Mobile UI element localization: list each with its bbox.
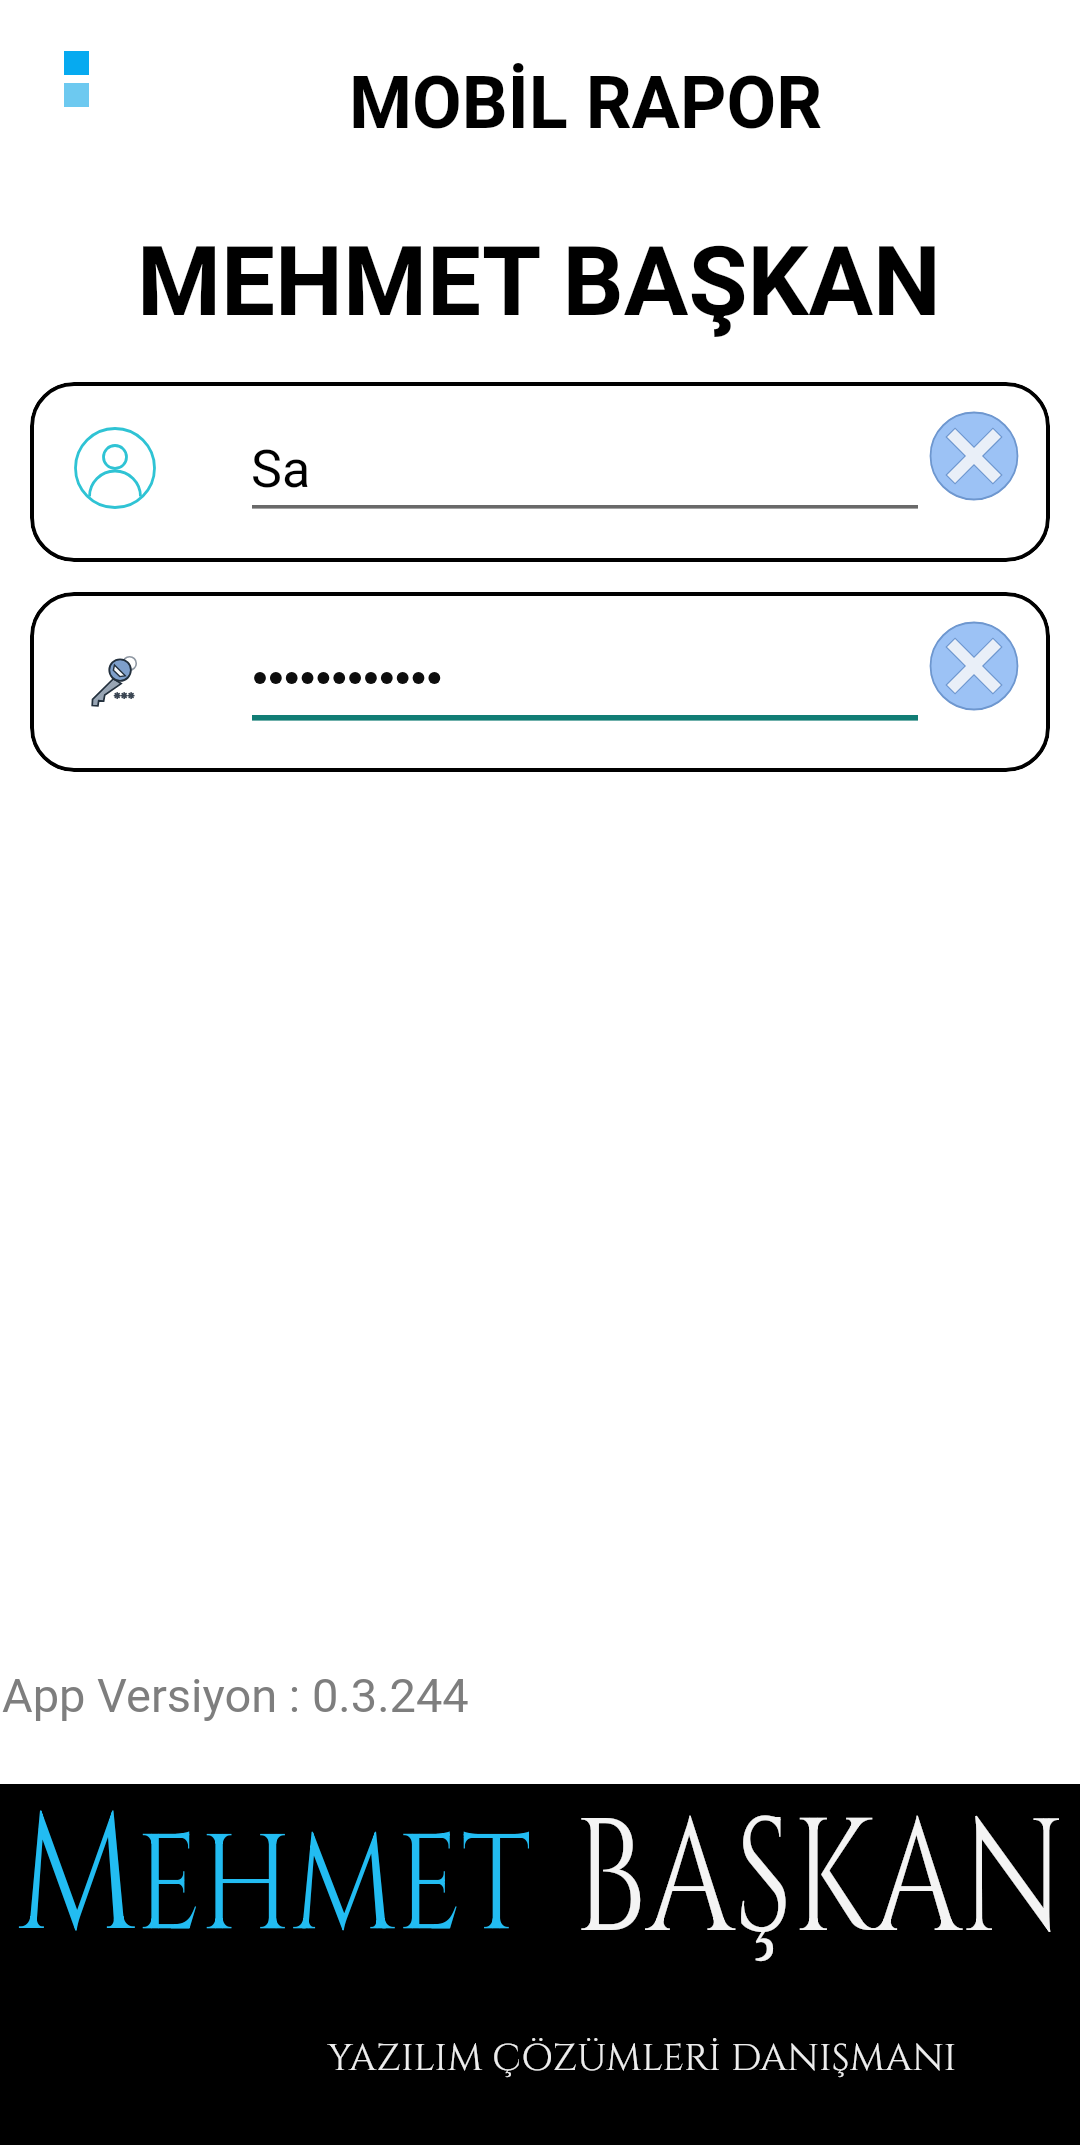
button[interactable]: Temizle: [929, 411, 1019, 501]
staticText: BAŞKAN: [574, 1774, 1065, 1990]
button[interactable]: Temizle: [30, 592, 1050, 772]
button[interactable]: Sa: [30, 382, 1050, 562]
staticText: EHMET: [136, 1796, 532, 1978]
other: Uygulama logosu: [64, 51, 89, 108]
staticText: MEHMET BAŞKAN: [137, 226, 941, 339]
staticText: Sa: [251, 439, 311, 500]
staticText: M: [17, 1768, 137, 1989]
staticText: App Versiyon : 0.3.244: [2, 1668, 469, 1723]
staticText: MOBİL RAPOR: [349, 61, 823, 145]
button[interactable]: Temizle: [929, 621, 1019, 711]
staticText: YAZILIM ÇÖZÜMLERİ DANIŞMANI: [102, 2033, 1080, 2084]
